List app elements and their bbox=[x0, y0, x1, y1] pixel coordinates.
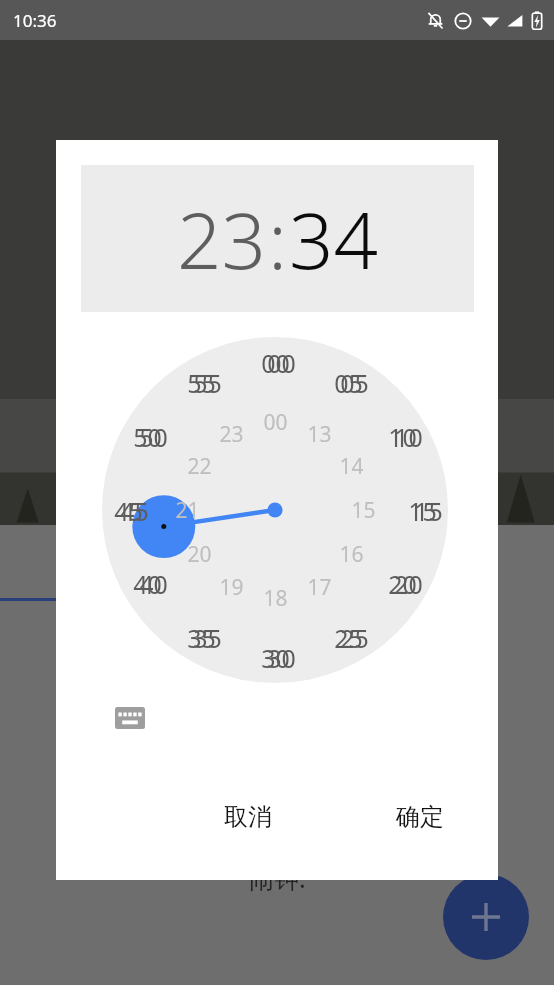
staticText: 25 bbox=[340, 621, 369, 655]
staticText: 闹钟. bbox=[249, 861, 306, 895]
staticText: 35 bbox=[187, 621, 216, 655]
staticText: 20 bbox=[394, 567, 423, 601]
staticText: 45 bbox=[120, 494, 149, 528]
staticText: 你 新 bbox=[187, 818, 368, 852]
staticText: 15 bbox=[351, 496, 376, 525]
staticText: 10:36 bbox=[13, 9, 57, 32]
staticText: 45 bbox=[114, 494, 143, 528]
staticText: : bbox=[268, 186, 288, 292]
staticText: 13 bbox=[307, 420, 332, 449]
staticText: 18 bbox=[263, 584, 288, 613]
staticText: 10 bbox=[388, 420, 417, 454]
staticText: 20 bbox=[388, 567, 417, 601]
staticText: 25 bbox=[334, 621, 363, 655]
staticText: 15 bbox=[408, 494, 437, 528]
staticText: 10 bbox=[394, 420, 423, 454]
staticText: 23 bbox=[177, 186, 267, 292]
staticText: 21 bbox=[175, 496, 200, 525]
staticText: 50 bbox=[133, 420, 162, 454]
staticText: 40 bbox=[139, 567, 168, 601]
staticText: 00 bbox=[263, 408, 288, 437]
staticText: 40 bbox=[133, 567, 162, 601]
staticText: 确定 bbox=[396, 802, 444, 832]
staticText: 19 bbox=[219, 573, 244, 602]
button[interactable]: Switch to text input bbox=[110, 698, 150, 738]
staticText: 50 bbox=[139, 420, 168, 454]
staticText: 55 bbox=[187, 366, 216, 400]
button[interactable]: Add alarm bbox=[443, 874, 529, 960]
staticText: 30 bbox=[267, 641, 296, 675]
staticText: 15 bbox=[414, 494, 443, 528]
staticText: 55 bbox=[193, 366, 222, 400]
staticText: 05 bbox=[334, 366, 363, 400]
staticText: 00 bbox=[261, 346, 290, 380]
staticText: 05 bbox=[340, 366, 369, 400]
button[interactable]: 确定 bbox=[372, 788, 468, 846]
staticText: 00 bbox=[267, 346, 296, 380]
staticText: 取消 bbox=[224, 802, 272, 832]
staticText: 30 bbox=[261, 641, 290, 675]
staticText: 14 bbox=[339, 452, 364, 481]
staticText: 17 bbox=[307, 573, 332, 602]
staticText: 23 bbox=[219, 420, 244, 449]
button[interactable]: 34 bbox=[289, 186, 379, 292]
staticText: 34 bbox=[289, 186, 379, 292]
button[interactable]: 00 bbox=[102, 337, 448, 683]
staticText: 35 bbox=[193, 621, 222, 655]
button[interactable]: 23 bbox=[177, 186, 267, 292]
button[interactable]: 取消 bbox=[200, 788, 296, 846]
staticText: 20 bbox=[187, 540, 212, 569]
staticText: 22 bbox=[187, 452, 212, 481]
staticText: 16 bbox=[339, 540, 364, 569]
